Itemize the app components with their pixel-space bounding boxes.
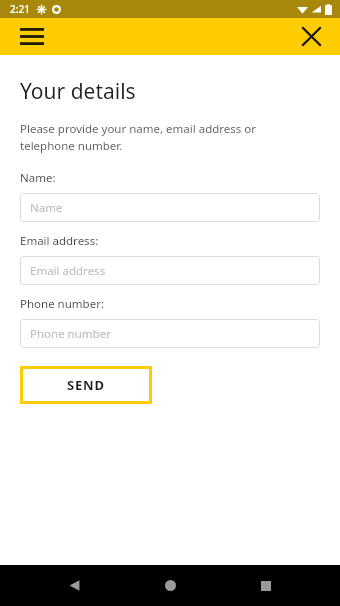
button[interactable]: Recent apps xyxy=(244,565,288,606)
staticText: Phone number xyxy=(30,326,111,342)
button[interactable]: Email address xyxy=(20,256,320,285)
button[interactable]: Open navigation menu xyxy=(10,18,54,55)
staticText: SEND xyxy=(67,376,105,394)
staticText: Email address: xyxy=(20,233,99,249)
staticText: Please provide your name, email address … xyxy=(20,121,256,153)
button[interactable]: Home xyxy=(148,565,192,606)
staticText: Your details xyxy=(20,77,136,106)
button[interactable]: SEND xyxy=(20,366,152,404)
staticText: 2:21 xyxy=(10,2,30,16)
button[interactable]: Name xyxy=(20,193,320,222)
staticText: Name xyxy=(30,200,63,216)
staticText: Email address xyxy=(30,263,106,279)
button[interactable]: Close xyxy=(289,18,333,55)
staticText: Name: xyxy=(20,170,56,186)
button[interactable]: Phone number xyxy=(20,319,320,348)
button[interactable]: Back xyxy=(52,565,96,606)
staticText: Phone number: xyxy=(20,296,104,312)
